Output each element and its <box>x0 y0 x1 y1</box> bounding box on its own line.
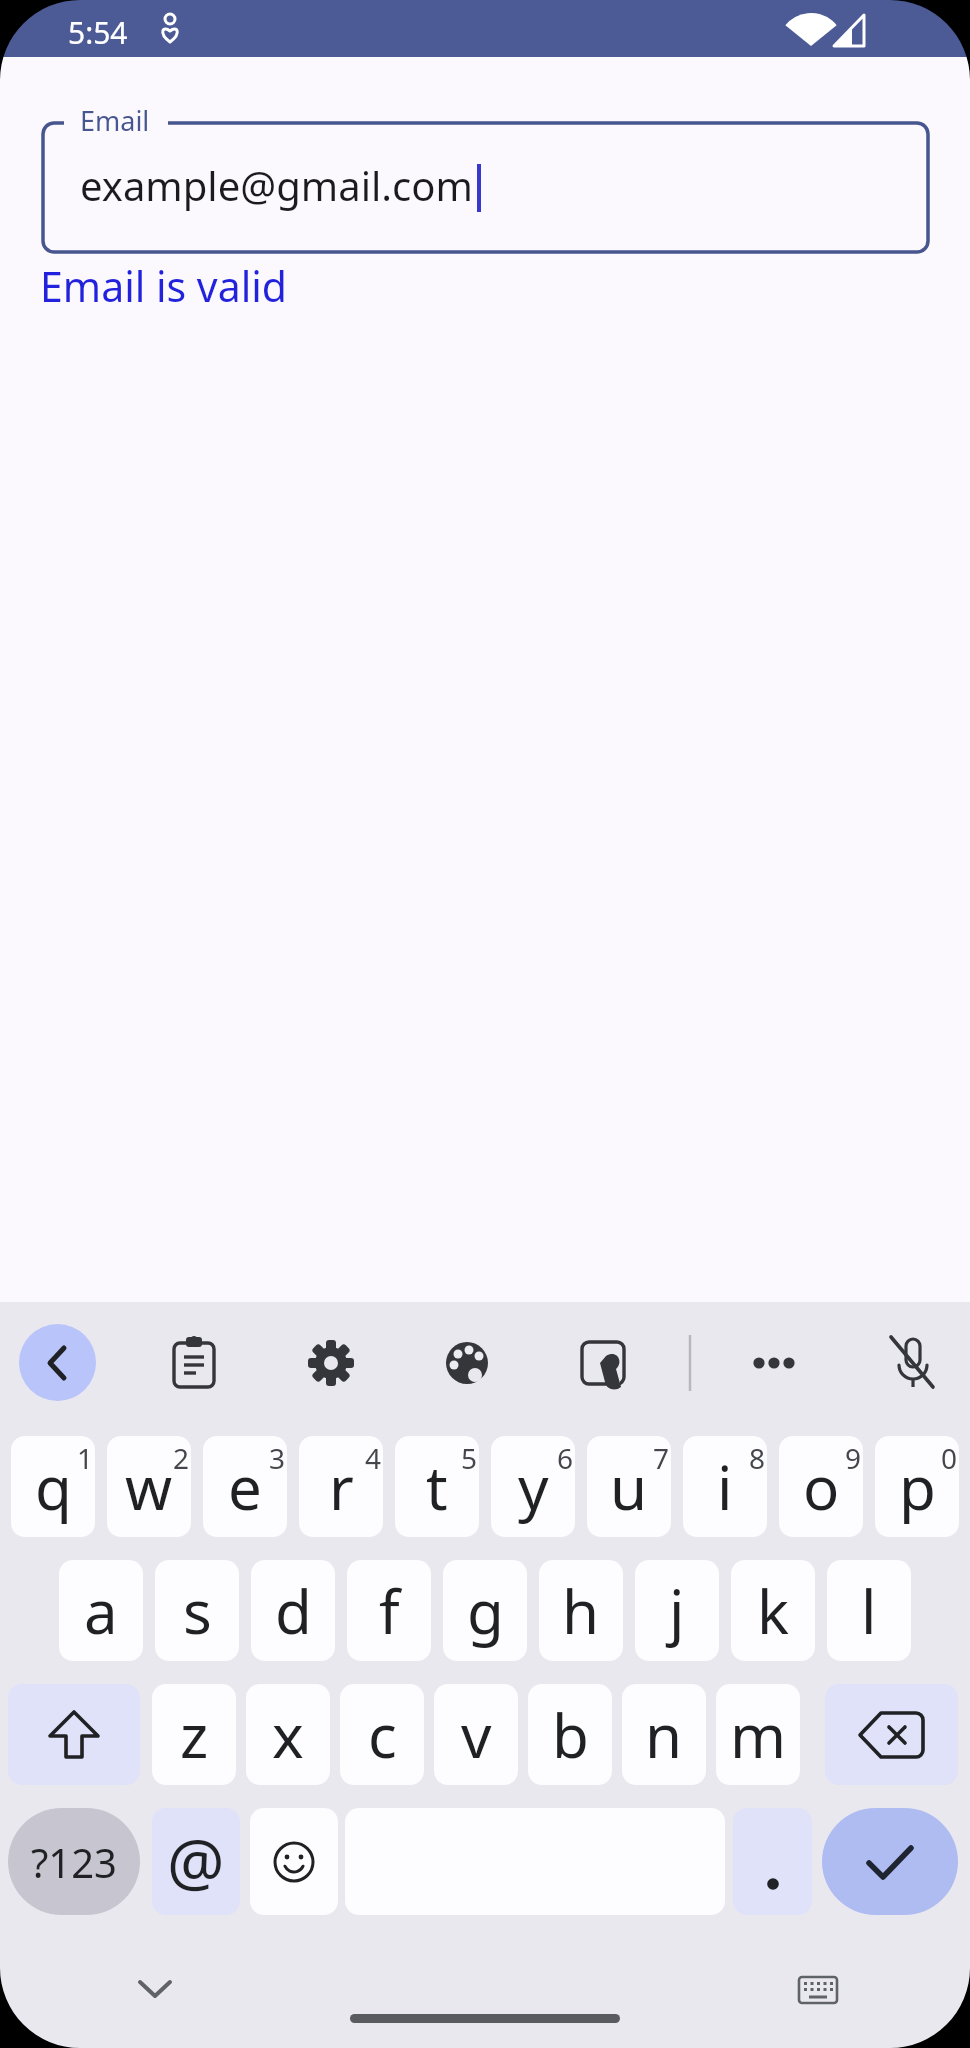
staticText: l <box>861 1570 877 1652</box>
staticText: z <box>180 1694 209 1776</box>
staticText: 4 <box>365 1439 382 1477</box>
staticText: d <box>275 1570 312 1652</box>
staticText: g <box>467 1570 504 1652</box>
button[interactable]: example@gmail.com <box>41 121 930 254</box>
staticText: 3 <box>269 1439 286 1477</box>
staticText: o <box>803 1446 840 1528</box>
staticText: h <box>562 1570 600 1652</box>
button[interactable] <box>822 1808 958 1915</box>
button[interactable] <box>825 1684 958 1785</box>
button[interactable]: h <box>539 1560 623 1661</box>
staticText: u <box>610 1446 648 1528</box>
button[interactable] <box>250 1808 338 1915</box>
button[interactable]: ?123 <box>8 1808 140 1915</box>
button[interactable] <box>8 1684 140 1785</box>
staticText: n <box>645 1694 683 1776</box>
staticText: 8 <box>749 1439 766 1477</box>
staticText: y <box>518 1446 549 1528</box>
staticText: 9 <box>845 1439 862 1477</box>
staticText: p <box>899 1446 936 1528</box>
staticText: 5:54 <box>68 12 128 53</box>
button[interactable]: g <box>443 1560 527 1661</box>
button[interactable]: s <box>155 1560 239 1661</box>
button[interactable]: v <box>434 1684 518 1785</box>
button[interactable]: d <box>251 1560 335 1661</box>
staticText: k <box>757 1570 790 1652</box>
staticText: 6 <box>557 1439 574 1477</box>
staticText: t <box>426 1446 448 1528</box>
button[interactable]: k <box>731 1560 815 1661</box>
button[interactable]: u <box>587 1436 671 1537</box>
button[interactable]: x <box>246 1684 330 1785</box>
staticText: Email is valid <box>40 258 288 314</box>
button[interactable]: w <box>107 1436 191 1537</box>
staticText: @ <box>167 1818 225 1905</box>
button[interactable]: i <box>683 1436 767 1537</box>
staticText: ?123 <box>31 1835 117 1889</box>
button[interactable]: t <box>395 1436 479 1537</box>
button[interactable]: n <box>622 1684 706 1785</box>
staticText: q <box>35 1446 72 1528</box>
button[interactable]: f <box>347 1560 431 1661</box>
button[interactable]: b <box>528 1684 612 1785</box>
staticText: w <box>125 1446 173 1528</box>
button[interactable]: j <box>635 1560 719 1661</box>
staticText: a <box>84 1570 118 1652</box>
staticText: i <box>717 1446 733 1528</box>
button[interactable]: l <box>827 1560 911 1661</box>
button[interactable]: @ <box>152 1808 240 1915</box>
staticText: example@gmail.com <box>80 158 473 212</box>
button[interactable]: a <box>59 1560 143 1661</box>
button[interactable]: m <box>716 1684 800 1785</box>
button[interactable]: q <box>11 1436 95 1537</box>
staticText: f <box>379 1570 400 1652</box>
button[interactable]: c <box>340 1684 424 1785</box>
staticText: c <box>368 1694 397 1776</box>
button[interactable]: o <box>779 1436 863 1537</box>
button[interactable]: z <box>152 1684 236 1785</box>
staticText: 1 <box>77 1439 94 1477</box>
staticText: r <box>329 1446 354 1528</box>
button[interactable]: y <box>491 1436 575 1537</box>
staticText: 2 <box>173 1439 190 1477</box>
staticText: b <box>552 1694 589 1776</box>
button[interactable] <box>733 1808 812 1915</box>
staticText: 5 <box>461 1439 478 1477</box>
staticText: 7 <box>653 1439 670 1477</box>
staticText: e <box>228 1446 262 1528</box>
staticText: j <box>669 1570 685 1652</box>
staticText: s <box>183 1570 212 1652</box>
staticText: 0 <box>941 1439 958 1477</box>
button[interactable]: r <box>299 1436 383 1537</box>
staticText: x <box>272 1694 304 1776</box>
button[interactable]: p <box>875 1436 959 1537</box>
staticText: v <box>461 1694 492 1776</box>
staticText: Email <box>80 102 150 139</box>
staticText: m <box>730 1694 787 1776</box>
button[interactable]: e <box>203 1436 287 1537</box>
button[interactable] <box>19 1324 96 1401</box>
